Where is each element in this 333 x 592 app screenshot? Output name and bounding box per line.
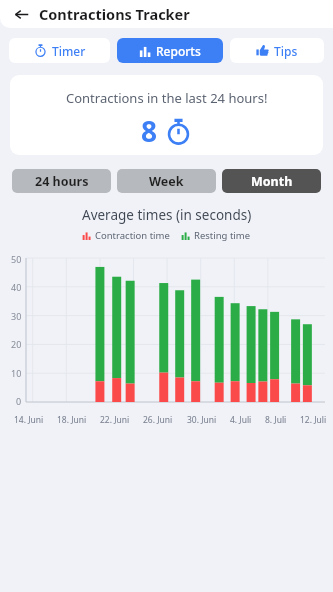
staticText: 22. Juni	[100, 414, 130, 426]
button[interactable]: Week	[117, 169, 216, 193]
button[interactable]: Timer	[9, 38, 110, 63]
staticText: Timer	[52, 43, 86, 59]
staticText: 8. Juli	[265, 414, 287, 426]
button[interactable]: Tips	[230, 38, 324, 63]
staticText: Reports	[156, 43, 201, 59]
staticText: Week	[149, 173, 184, 190]
staticText: Resting time	[194, 229, 251, 242]
staticText: 10	[11, 367, 22, 379]
staticText: 0	[16, 395, 22, 407]
staticText: Contraction time	[95, 229, 170, 242]
button[interactable]: Reports	[117, 38, 223, 63]
staticText: 14. Juni	[14, 414, 44, 426]
staticText: Average times (in seconds)	[82, 206, 252, 224]
staticText: 26. Juni	[143, 414, 173, 426]
staticText: Month	[251, 173, 293, 190]
staticText: 20	[11, 338, 22, 350]
button[interactable]: 24 hours	[12, 169, 111, 193]
staticText: Contractions Tracker	[39, 4, 190, 24]
staticText: 50	[11, 253, 22, 265]
staticText: 18. Juni	[57, 414, 87, 426]
staticText: 30. Juni	[187, 414, 217, 426]
staticText: 40	[11, 281, 22, 293]
staticText: 24 hours	[35, 173, 89, 190]
button[interactable]: Back	[11, 4, 31, 24]
staticText: 4. Juli	[230, 414, 252, 426]
staticText: 30	[11, 310, 22, 322]
staticText: 12. Juli	[300, 414, 327, 426]
staticText: Tips	[274, 43, 298, 59]
staticText: Contractions in the last 24 hours!	[66, 89, 268, 107]
button[interactable]: Contractions in the last 24 hours!	[10, 75, 323, 155]
staticText: 8	[141, 112, 158, 150]
button[interactable]: Month	[222, 169, 321, 193]
